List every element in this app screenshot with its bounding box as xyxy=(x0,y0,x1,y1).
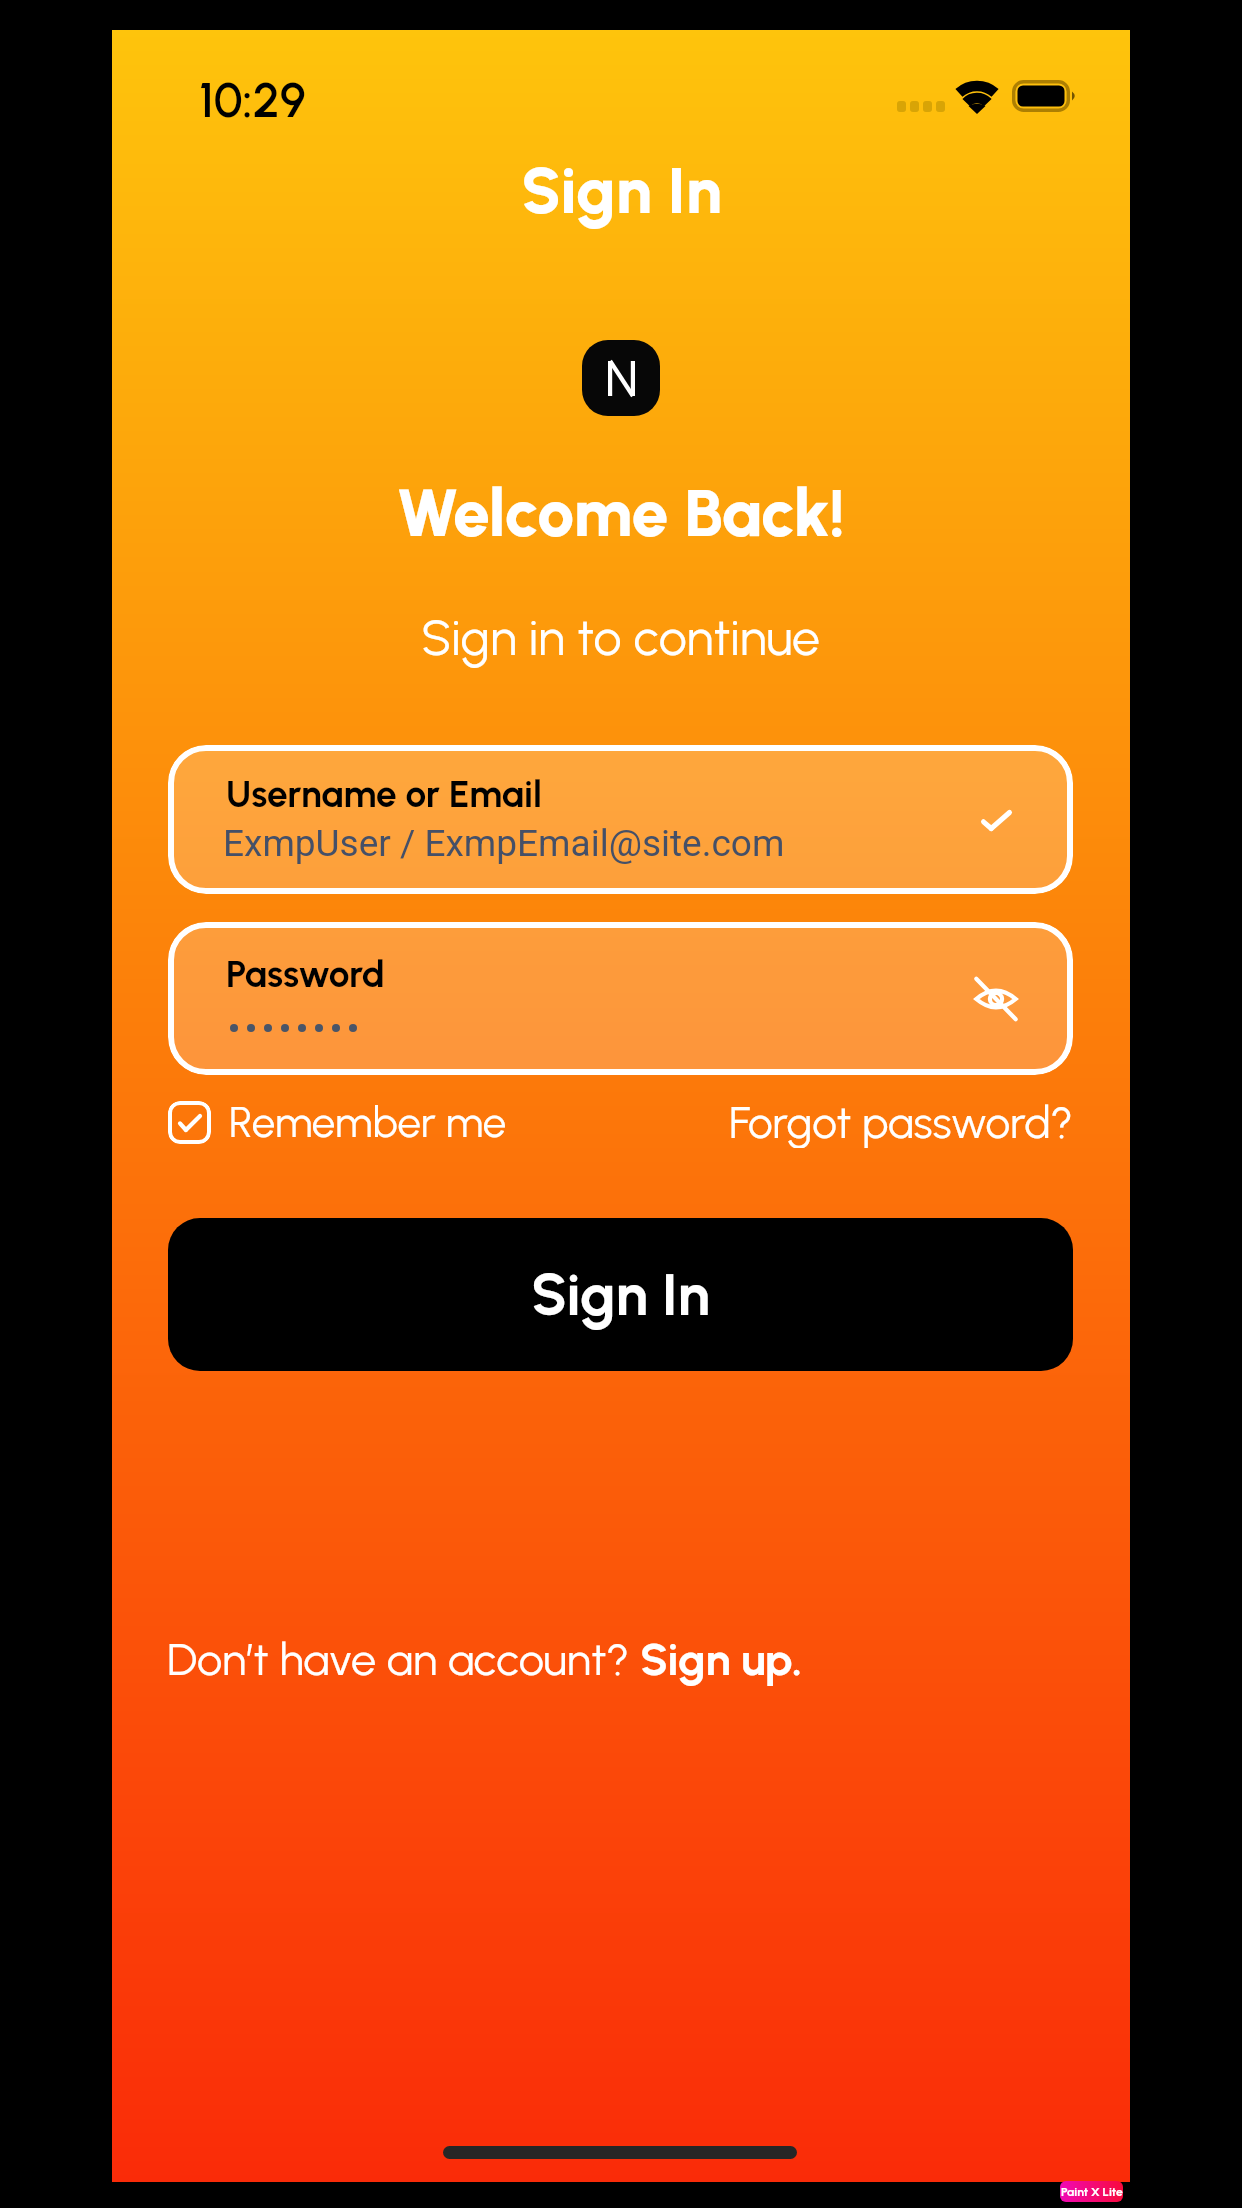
other: Valid input xyxy=(971,795,1022,846)
staticText: Password xyxy=(226,952,385,996)
button[interactable]: Forgot password? xyxy=(729,1096,1073,1148)
staticText: Username or Email xyxy=(226,772,542,816)
staticText: Don’t have an account? xyxy=(167,1632,640,1686)
staticText: 10:29 xyxy=(199,71,306,129)
staticText: Remember me xyxy=(229,1097,507,1147)
staticText: Sign in to continue xyxy=(421,607,821,667)
other: App logo xyxy=(582,340,660,416)
button[interactable]: Password xyxy=(168,922,1073,1075)
staticText: Sign up. xyxy=(640,1632,803,1686)
button[interactable]: Sign In xyxy=(168,1218,1073,1371)
button[interactable]: Remember me xyxy=(168,1097,507,1147)
staticText: Sign In xyxy=(521,152,722,229)
button[interactable]: Show password xyxy=(964,967,1028,1031)
staticText: Paint X Lite xyxy=(1061,2185,1123,2199)
staticText: Forgot password? xyxy=(729,1096,1073,1148)
staticText: ExmpUser / ExmpEmail@site.com xyxy=(223,822,785,865)
button[interactable]: Username or Email xyxy=(168,745,1073,894)
button[interactable]: Don’t have an account? xyxy=(167,1632,803,1686)
staticText: Welcome Back! xyxy=(396,473,846,552)
staticText: Sign In xyxy=(531,1260,710,1330)
